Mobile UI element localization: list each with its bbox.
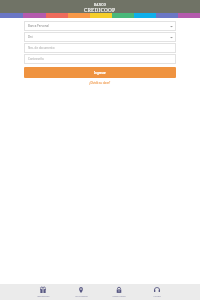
staticText: Banca Personal bbox=[28, 24, 170, 28]
button[interactable]: ¿Olvidó su clave? bbox=[88, 80, 112, 86]
staticText: Dni bbox=[28, 35, 170, 39]
button[interactable]: Sucursales bbox=[62, 284, 100, 300]
staticText: Beneficios bbox=[37, 294, 50, 297]
button[interactable]: Contraseña bbox=[24, 54, 176, 64]
button[interactable]: Ayuda bbox=[138, 284, 176, 300]
button[interactable]: Clave Móvil bbox=[100, 284, 138, 300]
staticText: Sucursales bbox=[75, 294, 88, 297]
button[interactable]: Ingresar bbox=[24, 67, 176, 78]
staticText: Contraseña bbox=[28, 57, 173, 61]
button[interactable]: Beneficios bbox=[24, 284, 62, 300]
staticText: Clave Móvil bbox=[112, 294, 126, 297]
staticText: Ingresar bbox=[94, 71, 106, 75]
button[interactable]: Nro. de documento bbox=[24, 43, 176, 53]
staticText: Ayuda bbox=[153, 294, 161, 297]
staticText: Nro. de documento bbox=[28, 46, 173, 50]
button[interactable]: Dni bbox=[24, 32, 176, 42]
staticText: BANCO bbox=[94, 3, 107, 7]
staticText: CREDICOOP bbox=[84, 6, 116, 13]
button[interactable]: Banca Personal bbox=[24, 21, 176, 31]
